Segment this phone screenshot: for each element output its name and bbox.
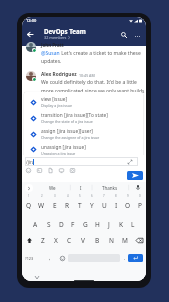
button[interactable]: X xyxy=(49,233,62,247)
button[interactable]: Comma xyxy=(45,251,55,265)
button[interactable]: Emoji xyxy=(24,166,33,175)
staticText: updates. xyxy=(41,58,62,65)
staticText: ?123 xyxy=(25,256,34,261)
button[interactable]: ?123 xyxy=(23,251,36,265)
button[interactable]: Backspace xyxy=(132,233,146,247)
button[interactable]: Search xyxy=(118,29,130,41)
button[interactable]: I xyxy=(70,182,91,193)
button[interactable]: P xyxy=(134,198,146,212)
button[interactable]: Back xyxy=(23,28,36,41)
staticText: N xyxy=(109,236,114,245)
staticText: R xyxy=(65,201,70,210)
button[interactable]: W xyxy=(35,198,48,212)
staticText: unassign [jira issue] xyxy=(41,144,86,151)
button[interactable]: Send xyxy=(127,171,143,180)
staticText: Q xyxy=(26,201,32,210)
button[interactable]: K xyxy=(115,217,127,231)
button[interactable]: F xyxy=(67,217,79,231)
staticText: H xyxy=(95,220,100,229)
staticText: view [issue] xyxy=(41,96,67,103)
button[interactable]: view [issue] xyxy=(24,94,143,110)
button[interactable]: Y xyxy=(86,198,98,212)
button[interactable]: Expand xyxy=(126,158,134,166)
button[interactable]: S xyxy=(42,217,55,231)
staticText: U xyxy=(102,201,107,210)
button[interactable]: We xyxy=(35,182,70,193)
button[interactable]: Camera xyxy=(68,166,77,175)
staticText: T xyxy=(78,201,82,210)
button[interactable]: More suggestions xyxy=(25,184,33,192)
staticText: 2 xyxy=(41,194,43,198)
button[interactable]: B xyxy=(90,233,104,247)
button[interactable]: H xyxy=(91,217,103,231)
button[interactable]: V xyxy=(76,233,90,247)
staticText: Z xyxy=(41,236,45,245)
staticText: We could definitely do that. It'd be a l… xyxy=(41,79,137,86)
button[interactable]: Voice input xyxy=(132,182,144,193)
staticText: D xyxy=(59,220,64,229)
button[interactable]: Image xyxy=(35,166,44,175)
button[interactable]: More options xyxy=(131,30,143,42)
staticText: 8 xyxy=(115,194,117,198)
staticText: , xyxy=(49,255,51,262)
button[interactable]: C xyxy=(62,233,76,247)
button[interactable]: File xyxy=(46,166,55,175)
button[interactable]: unassign [jira issue] xyxy=(24,142,143,157)
button[interactable]: L xyxy=(127,217,139,231)
staticText: more complicated since we only want buil… xyxy=(41,88,145,95)
staticText: Display a jira issue xyxy=(41,103,72,108)
staticText: V xyxy=(81,236,85,245)
staticText: O xyxy=(125,201,131,210)
staticText: 0 xyxy=(139,194,141,198)
button[interactable]: Hide keyboard xyxy=(33,273,41,281)
staticText: F xyxy=(71,220,75,229)
staticText: 10:45 AM xyxy=(79,73,95,78)
button[interactable]: Period xyxy=(121,251,129,265)
staticText: J xyxy=(108,220,110,229)
staticText: B xyxy=(95,236,100,245)
button[interactable]: Q xyxy=(22,198,35,212)
staticText: transition [jira issue][To state] xyxy=(41,112,108,119)
staticText: Change the state of a jira issue xyxy=(41,119,93,124)
button[interactable]: U xyxy=(98,198,110,212)
button[interactable]: N xyxy=(104,233,118,247)
button[interactable]: E xyxy=(48,198,61,212)
button[interactable]: assign [jira issue][user] xyxy=(24,126,143,142)
staticText: We xyxy=(49,185,56,191)
staticText: 6 xyxy=(91,194,93,198)
button[interactable]: Enter xyxy=(128,254,143,262)
button[interactable]: Shift xyxy=(22,233,36,247)
staticText: 1 xyxy=(28,194,30,198)
staticText: K xyxy=(119,220,124,229)
button[interactable]: transition [jira issue][To state] xyxy=(24,110,143,126)
staticText: Thanks xyxy=(102,185,118,191)
staticText: W xyxy=(38,201,45,210)
button[interactable]: Z xyxy=(36,233,49,247)
staticText: E xyxy=(53,201,57,210)
staticText: I xyxy=(115,201,118,210)
button[interactable]: Thanks xyxy=(91,182,128,193)
button[interactable]: J xyxy=(103,217,115,231)
button[interactable]: A xyxy=(29,217,42,231)
button[interactable]: Emoji xyxy=(57,251,68,265)
button[interactable]: R xyxy=(61,198,74,212)
button[interactable]: T xyxy=(74,198,86,212)
button[interactable]: Video xyxy=(57,166,66,175)
staticText: 32 members xyxy=(44,35,67,40)
staticText: Change the assignee of a jira issue xyxy=(41,135,100,140)
staticText: L xyxy=(131,220,135,229)
staticText: John Pratt xyxy=(41,42,64,48)
staticText: Y xyxy=(90,201,94,210)
staticText: Unassign a jira issue xyxy=(41,151,76,156)
button[interactable]: D xyxy=(55,217,67,231)
staticText: C xyxy=(67,236,72,245)
button[interactable]: /jira xyxy=(25,157,138,166)
button[interactable]: M xyxy=(118,233,132,247)
button[interactable]: G xyxy=(79,217,91,231)
staticText: Let's create a ticket to make these xyxy=(60,50,141,57)
button[interactable]: I xyxy=(110,198,122,212)
staticText: @Susan xyxy=(41,50,60,57)
button[interactable]: O xyxy=(122,198,134,212)
staticText: . xyxy=(124,255,126,262)
